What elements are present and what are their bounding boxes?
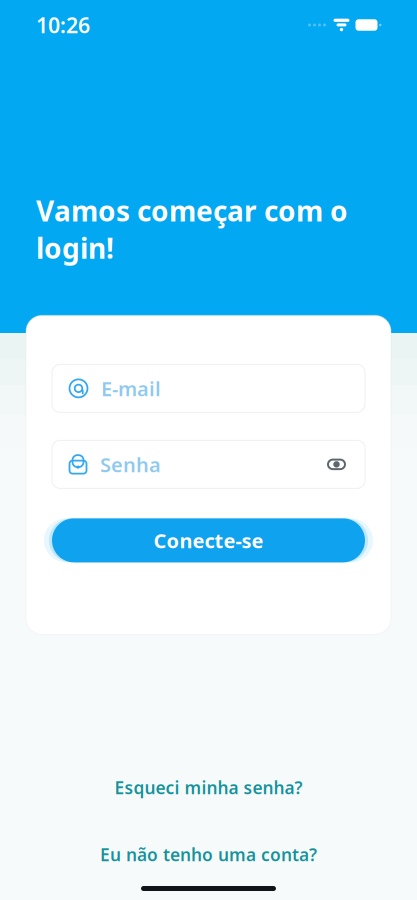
staticText: E-mail (101, 375, 161, 402)
button[interactable]: Esqueci minha senha? (98, 768, 318, 807)
staticText: Eu não tenho uma conta? (100, 843, 317, 866)
staticText: Vamos começar com o login! (36, 192, 348, 266)
button[interactable]: Show password (324, 451, 349, 477)
staticText: 10:26 (36, 11, 90, 39)
button[interactable]: Conecte-se (52, 518, 365, 562)
staticText: Esqueci minha senha? (114, 776, 302, 799)
staticText: Senha (100, 451, 161, 478)
staticText: Conecte-se (153, 527, 263, 554)
button[interactable]: Eu não tenho uma conta? (84, 835, 333, 874)
